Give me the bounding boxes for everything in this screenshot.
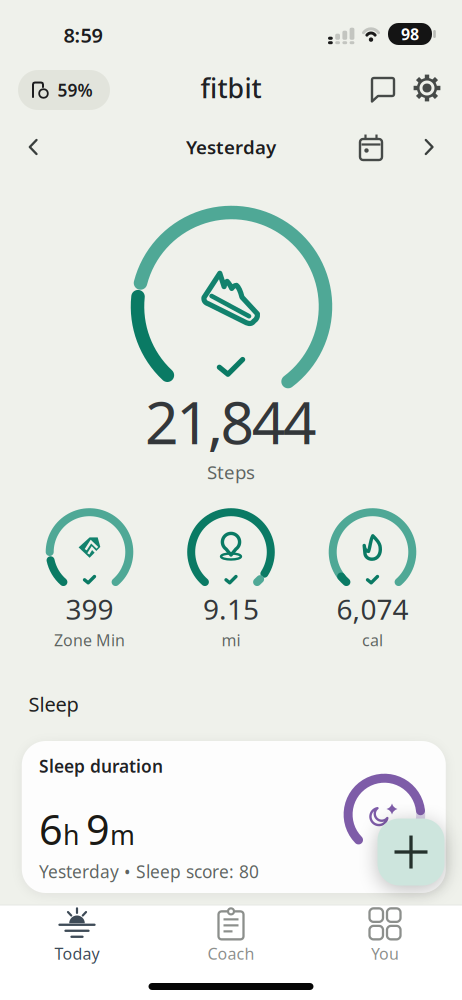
staticText: 98 <box>401 23 419 45</box>
staticText: Yesterday • Sleep score: 80 <box>39 860 259 883</box>
button[interactable]: Device battery 59% <box>18 70 110 110</box>
staticText: Sleep duration <box>39 754 163 777</box>
staticText: Coach <box>207 943 254 964</box>
staticText: 21,844 <box>145 382 317 460</box>
button[interactable]: You <box>325 904 445 966</box>
button[interactable]: Previous day <box>16 130 50 164</box>
button[interactable]: Coach <box>171 904 291 966</box>
button[interactable]: Sleep duration details <box>22 741 446 893</box>
button[interactable]: Today <box>17 904 137 966</box>
staticText: Yesterday <box>186 135 276 159</box>
staticText: Today <box>54 943 99 964</box>
staticText: Zone Min <box>54 629 125 651</box>
button[interactable]: Messages <box>368 73 398 103</box>
staticText: 9.15 <box>203 590 259 628</box>
button[interactable]: Settings <box>410 71 444 105</box>
staticText: 399 <box>65 590 113 628</box>
button[interactable]: Calendar <box>354 130 388 164</box>
staticText: mi <box>221 629 240 651</box>
staticText: 8:59 <box>63 22 102 48</box>
button[interactable]: Next day <box>412 130 446 164</box>
staticText: fitbit <box>200 70 261 106</box>
staticText: 6,074 <box>336 590 408 628</box>
button[interactable]: Add <box>377 818 444 885</box>
staticText: Sleep <box>28 691 78 717</box>
staticText: 6h 9m <box>39 802 135 856</box>
staticText: Steps <box>207 460 255 484</box>
staticText: cal <box>362 629 383 651</box>
staticText: 59% <box>57 78 92 101</box>
staticText: You <box>371 943 399 964</box>
